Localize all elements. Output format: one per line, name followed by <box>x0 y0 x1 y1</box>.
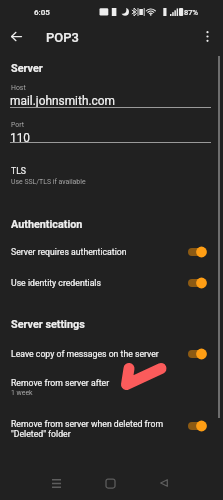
staticText: 87% <box>184 8 199 17</box>
button[interactable]: Remove from server when deleted from <box>0 419 223 443</box>
staticText: 6:05 <box>34 8 50 17</box>
button[interactable]: Home <box>95 468 125 498</box>
button[interactable]: Host <box>0 84 223 109</box>
staticText: Authentication <box>11 218 83 231</box>
button[interactable]: Back <box>149 468 179 498</box>
staticText: Host <box>11 84 26 92</box>
button[interactable]: More options <box>196 25 219 48</box>
staticText: Use SSL/TLS if available <box>11 178 86 186</box>
button[interactable]: Recents <box>41 468 71 498</box>
staticText: Use identity credentials <box>11 278 101 288</box>
staticText: 110 <box>10 131 31 145</box>
button[interactable]: TLS <box>0 165 223 189</box>
button[interactable]: Port <box>0 121 223 146</box>
staticText: Leave copy of messages on the server <box>11 349 159 359</box>
staticText: Remove from server after <box>11 378 110 388</box>
staticText: Port <box>11 121 24 129</box>
staticText: TLS <box>11 166 27 176</box>
button[interactable]: Use identity credentials <box>0 277 223 299</box>
staticText: Remove from server when deleted from <box>11 419 164 429</box>
staticText: POP3 <box>46 30 79 45</box>
staticText: "Deleted" folder <box>11 429 71 439</box>
staticText: Server <box>11 62 43 75</box>
staticText: mail.johnsmith.com <box>10 94 116 108</box>
button[interactable]: Remove from server after <box>0 378 223 402</box>
staticText: 1 week <box>11 389 33 397</box>
button[interactable]: Back <box>5 25 28 48</box>
button[interactable]: Leave copy of messages on the server <box>0 348 223 370</box>
button[interactable]: Server requires authentication <box>0 246 223 268</box>
staticText: Server settings <box>11 318 85 331</box>
staticText: Server requires authentication <box>11 247 127 257</box>
